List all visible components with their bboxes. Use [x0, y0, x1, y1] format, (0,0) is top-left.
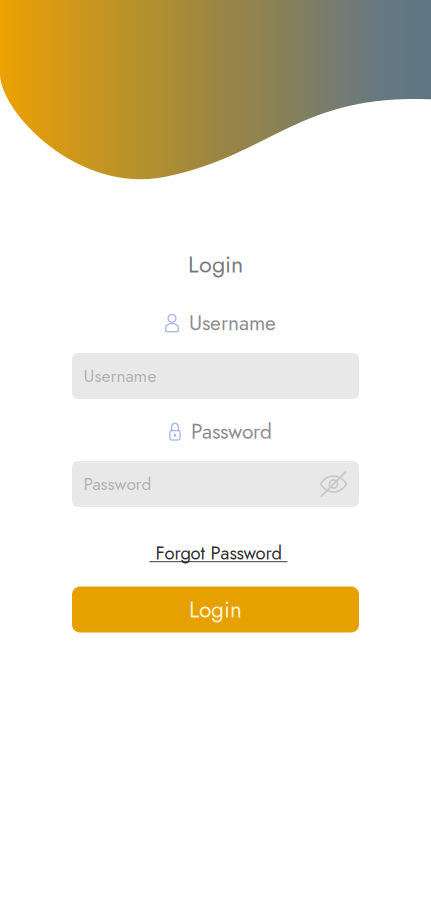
staticText: Username [189, 308, 276, 338]
staticText: Login [188, 248, 243, 281]
button[interactable]: Login [72, 586, 359, 632]
staticText: Forgot Password [149, 540, 287, 566]
staticText: Login [189, 593, 242, 626]
button[interactable]: Show password [319, 470, 347, 498]
button[interactable]: Forgot Password [149, 540, 287, 566]
staticText: Password [191, 416, 272, 447]
staticText: Username [83, 363, 156, 388]
staticText: Password [83, 471, 151, 496]
